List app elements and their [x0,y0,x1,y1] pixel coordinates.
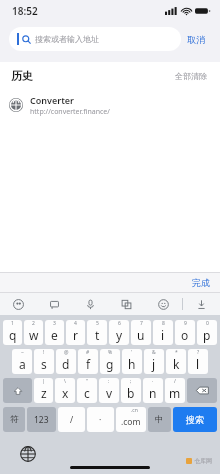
button[interactable]: 符 [3,407,25,432]
staticText: k [173,356,180,372]
button[interactable]: 123 [27,407,56,432]
staticText: 0 [206,320,209,327]
staticText: y [116,327,123,343]
staticText: h [128,356,136,372]
staticText: 4 [74,320,77,327]
button[interactable]: 取消 [181,30,211,49]
button[interactable]: ! [34,349,54,374]
staticText: x [62,385,69,401]
staticText: l [196,356,200,372]
button[interactable]: · [143,378,163,403]
button[interactable]: Converter [0,90,220,120]
button[interactable]: Download [183,293,220,315]
button[interactable]: | [34,378,53,403]
button[interactable]: 2 [24,320,43,345]
button[interactable]: 8 [153,320,173,345]
button[interactable]: / [165,378,185,403]
staticText: 9 [184,320,187,327]
button[interactable]: 0 [197,320,217,345]
button[interactable]: 完成 [182,274,220,291]
button[interactable]: Emoji [145,293,182,315]
staticText: ? [197,349,200,356]
button[interactable]: Messages [36,293,72,315]
staticText: ~ [21,349,24,356]
staticText: f [86,356,91,372]
staticText: 取消 [187,34,205,45]
staticText: Converter [30,94,74,106]
button[interactable]: \ [55,378,75,403]
button[interactable]: 9 [175,320,195,345]
staticText: " [86,378,89,385]
staticText: .cn [131,407,138,414]
button[interactable]: 7 [131,320,151,345]
button[interactable]: Backspace [187,378,217,403]
staticText: 仓库网 [194,457,212,465]
staticText: & [152,349,156,356]
button[interactable]: .cn [116,407,146,432]
staticText: 8 [162,320,165,327]
staticText: % [108,349,113,356]
staticText: 123 [34,414,49,426]
staticText: u [137,327,145,343]
button[interactable]: 搜索或者输入地址 [9,27,181,51]
staticText: n [149,385,157,401]
button[interactable]: 全部清除 [173,67,209,85]
button[interactable]: : [99,378,119,403]
staticText: @ [64,349,69,356]
button[interactable]: * [166,349,186,374]
staticText: 历史 [11,69,33,83]
button[interactable]: Switch keyboard [20,446,36,462]
staticText: ; [130,378,132,385]
staticText: d [62,356,70,372]
staticText: o [181,327,189,343]
staticText: · [152,378,154,385]
button[interactable]: ; [121,378,141,403]
staticText: 中 [155,414,164,425]
staticText: s [41,356,47,372]
button[interactable]: 4 [66,320,85,345]
staticText: 5 [96,320,99,327]
staticText: 搜索 [186,414,204,425]
staticText: / [70,414,74,426]
staticText: q [9,327,17,343]
button[interactable]: / [58,407,85,432]
staticText: .com [121,416,141,428]
button[interactable]: Keyboard settings [0,293,36,315]
staticText: 18:52 [12,4,38,18]
staticText: v [106,385,113,401]
staticText: ! [43,349,45,356]
button[interactable]: 3 [45,320,64,345]
button[interactable]: ? [188,349,208,374]
staticText: b [127,385,135,401]
button[interactable]: # [78,349,98,374]
staticText: http://converter.finance/ [30,107,110,117]
button[interactable]: % [100,349,120,374]
staticText: c [84,385,90,401]
staticText: w [29,327,39,343]
staticText: z [41,385,47,401]
staticText: i [161,327,165,343]
button[interactable]: Voice input [72,293,108,315]
button[interactable]: Translate [108,293,145,315]
button[interactable]: ~ [12,349,32,374]
staticText: 符 [10,414,19,425]
button[interactable]: 5 [87,320,107,345]
staticText: ' [131,349,133,356]
staticText: * [175,349,178,356]
staticText: r [73,327,78,343]
button[interactable]: · [87,407,114,432]
button[interactable]: " [77,378,97,403]
button[interactable]: 6 [109,320,129,345]
button[interactable]: 搜索 [173,407,217,432]
button[interactable]: 中 [148,407,171,432]
staticText: a [19,356,26,372]
button[interactable]: Shift [3,378,32,403]
button[interactable]: 1 [3,320,22,345]
button[interactable]: @ [56,349,76,374]
button[interactable]: & [144,349,164,374]
staticText: / [174,378,176,385]
staticText: 2 [32,320,35,327]
staticText: t [95,327,100,343]
button[interactable]: ' [122,349,142,374]
staticText: m [169,385,181,401]
